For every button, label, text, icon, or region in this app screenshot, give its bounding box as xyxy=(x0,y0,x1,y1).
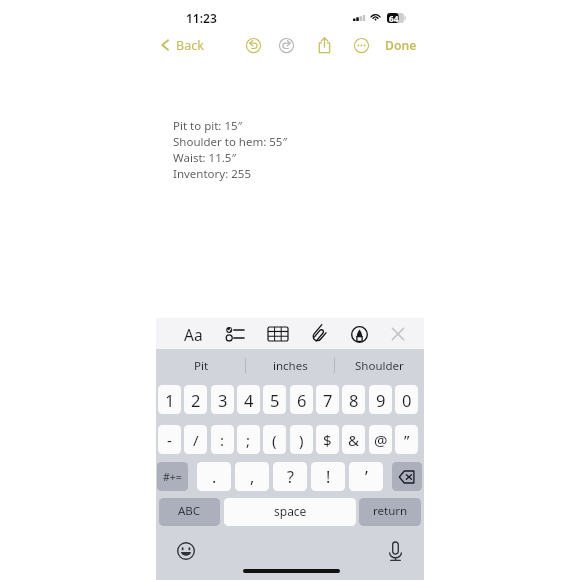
button[interactable]: - xyxy=(158,425,181,454)
button[interactable]: ! xyxy=(311,462,345,491)
button[interactable]: space xyxy=(224,498,356,526)
staticText: ABC xyxy=(178,503,201,519)
button[interactable]: More options xyxy=(350,34,372,56)
staticText: 0 xyxy=(402,389,412,411)
staticText: Pit to pit: 15″ xyxy=(173,118,243,134)
staticText: Waist: 11.5″ xyxy=(173,150,237,166)
button[interactable]: Back xyxy=(161,34,204,56)
button[interactable]: Redo xyxy=(275,34,297,56)
staticText: 64 xyxy=(389,13,399,23)
button[interactable]: Markup xyxy=(342,318,376,350)
button[interactable]: ) xyxy=(290,425,313,454)
button[interactable]: ; xyxy=(237,425,260,454)
staticText: Inventory: 255 xyxy=(173,166,251,182)
button[interactable]: Done xyxy=(385,34,417,56)
button[interactable]: / xyxy=(184,425,207,454)
staticText: Shoulder xyxy=(355,358,404,374)
button[interactable]: Share xyxy=(313,34,335,56)
staticText: 7 xyxy=(323,389,333,411)
button[interactable]: 7 xyxy=(316,385,339,414)
button[interactable]: Attachment xyxy=(302,318,336,350)
button[interactable]: . xyxy=(197,462,231,491)
button[interactable]: Dictation xyxy=(384,540,406,562)
button[interactable]: ” xyxy=(395,425,418,454)
staticText: space xyxy=(274,503,307,519)
staticText: ” xyxy=(404,430,410,450)
staticText: ; xyxy=(246,430,251,450)
button[interactable]: Backspace xyxy=(392,462,422,491)
staticText: 5 xyxy=(270,389,280,411)
button[interactable]: ABC xyxy=(159,498,220,526)
staticText: 4 xyxy=(244,389,254,411)
staticText: 6 xyxy=(297,389,307,411)
button[interactable]: 3 xyxy=(211,385,234,414)
staticText: ’ xyxy=(365,466,368,488)
staticText: ! xyxy=(326,466,331,488)
staticText: inches xyxy=(273,358,308,374)
staticText: / xyxy=(193,430,199,450)
button[interactable]: , xyxy=(235,462,269,491)
button[interactable]: 1 xyxy=(158,385,181,414)
button[interactable]: 6 xyxy=(290,385,313,414)
staticText: 11:23 xyxy=(186,10,217,26)
staticText: return xyxy=(373,503,408,519)
button[interactable]: $ xyxy=(316,425,339,454)
staticText: Back xyxy=(176,37,204,54)
button[interactable]: Pit xyxy=(159,349,243,382)
staticText: 2 xyxy=(191,389,201,411)
button[interactable]: & xyxy=(342,425,365,454)
button[interactable]: ? xyxy=(273,462,307,491)
staticText: Shoulder to hem: 55″ xyxy=(173,134,288,150)
staticText: ? xyxy=(287,466,294,488)
staticText: & xyxy=(348,430,359,450)
button[interactable]: ( xyxy=(263,425,286,454)
button[interactable]: ’ xyxy=(349,462,383,491)
staticText: 3 xyxy=(218,389,228,411)
button[interactable]: Hide keyboard xyxy=(381,318,415,350)
staticText: - xyxy=(167,430,172,450)
button[interactable]: Undo xyxy=(242,34,264,56)
staticText: 8 xyxy=(349,389,359,411)
button[interactable]: 4 xyxy=(237,385,260,414)
staticText: , xyxy=(250,466,255,488)
button[interactable]: Emoji xyxy=(175,540,197,562)
button[interactable]: Shoulder xyxy=(337,349,421,382)
button[interactable]: 8 xyxy=(342,385,365,414)
staticText: Done xyxy=(385,37,417,54)
button[interactable]: #+= xyxy=(157,462,188,491)
staticText: : xyxy=(220,430,225,450)
button[interactable]: 0 xyxy=(395,385,418,414)
staticText: $ xyxy=(323,430,332,450)
staticText: 9 xyxy=(376,389,386,411)
button[interactable]: Checklist xyxy=(218,318,252,350)
button[interactable]: Table xyxy=(261,318,295,350)
button[interactable]: Formatting xyxy=(176,318,210,350)
staticText: Pit xyxy=(194,358,209,374)
button[interactable]: inches xyxy=(248,349,332,382)
staticText: . xyxy=(212,466,217,488)
staticText: ) xyxy=(299,430,304,450)
button[interactable]: 9 xyxy=(369,385,392,414)
button[interactable]: 2 xyxy=(184,385,207,414)
staticText: #+= xyxy=(163,470,182,484)
button[interactable]: : xyxy=(211,425,234,454)
staticText: 1 xyxy=(165,389,175,411)
button[interactable]: 5 xyxy=(263,385,286,414)
staticText: Aa xyxy=(184,324,203,345)
staticText: ( xyxy=(272,430,277,450)
staticText: @ xyxy=(374,430,388,450)
button[interactable]: @ xyxy=(369,425,392,454)
button[interactable]: return xyxy=(359,498,421,526)
